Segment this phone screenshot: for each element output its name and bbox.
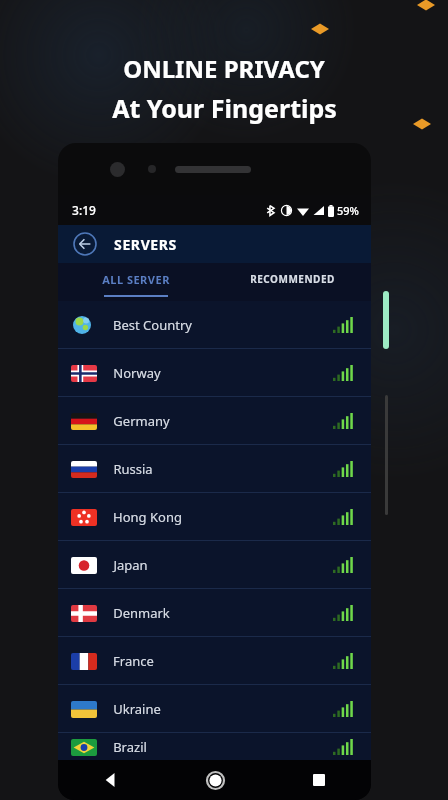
staticText: At Your Fingertips xyxy=(112,91,337,125)
button[interactable]: Recents xyxy=(267,760,371,800)
staticText: SERVERS xyxy=(114,235,177,254)
button[interactable]: Germany xyxy=(58,397,371,444)
button[interactable]: France xyxy=(58,637,371,684)
staticText: Brazil xyxy=(113,738,147,756)
staticText: Norway xyxy=(113,364,161,382)
staticText: Ukraine xyxy=(113,700,161,718)
button[interactable]: Back xyxy=(72,231,98,257)
staticText: ALL SERVER xyxy=(102,272,170,287)
staticText: 3:19 xyxy=(72,202,96,218)
staticText: France xyxy=(113,652,154,670)
staticText: RECOMMENDED xyxy=(250,272,335,286)
button[interactable]: Norway xyxy=(58,349,371,396)
button[interactable]: Russia xyxy=(58,445,371,492)
button[interactable]: Back xyxy=(58,760,163,800)
staticText: Russia xyxy=(113,460,153,478)
staticText: Best Country xyxy=(113,316,192,334)
button[interactable]: Ukraine xyxy=(58,685,371,732)
button[interactable]: Best Country xyxy=(58,301,371,348)
button[interactable]: Denmark xyxy=(58,589,371,636)
button[interactable]: Hong Kong xyxy=(58,493,371,540)
button[interactable]: Home xyxy=(163,760,267,800)
staticText: Germany xyxy=(113,412,170,430)
staticText: ONLINE PRIVACY xyxy=(123,52,325,85)
staticText: Denmark xyxy=(113,604,170,622)
button[interactable]: RECOMMENDED xyxy=(214,263,371,295)
staticText: Japan xyxy=(113,556,148,574)
button[interactable]: Brazil xyxy=(58,733,371,760)
staticText: 59% xyxy=(337,203,359,218)
staticText: Hong Kong xyxy=(113,508,182,526)
button[interactable]: ALL SERVER xyxy=(58,263,214,295)
button[interactable]: Japan xyxy=(58,541,371,588)
